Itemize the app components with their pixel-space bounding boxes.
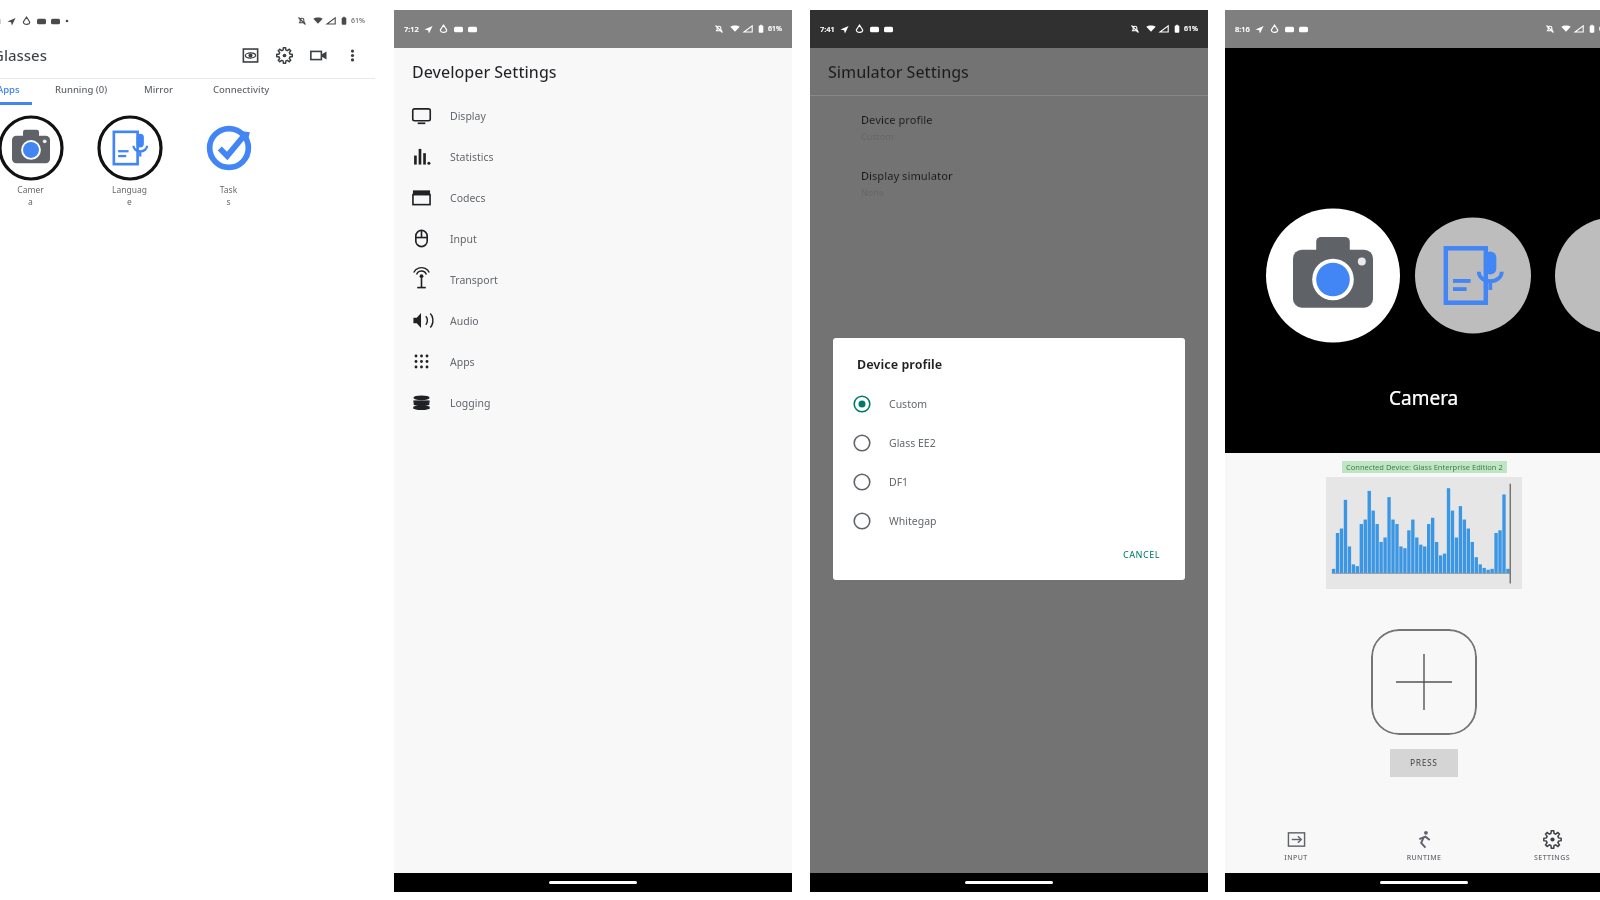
button[interactable]: Settings	[267, 38, 301, 72]
staticText: Connectivity	[213, 83, 270, 96]
staticText: Input	[450, 232, 477, 246]
staticText: Whitegap	[889, 514, 937, 528]
button[interactable]: Add	[1371, 629, 1477, 735]
staticText: 7:11	[0, 16, 2, 26]
staticText: Logging	[450, 396, 491, 410]
button[interactable]: Whitegap	[833, 501, 1185, 540]
button[interactable]: Apps	[394, 341, 792, 382]
staticText: Camer a	[0, 184, 80, 208]
staticText: Device profile	[861, 112, 933, 127]
button[interactable]: Input	[394, 218, 792, 259]
button[interactable]: Glass EE2	[833, 423, 1185, 462]
button[interactable]: PRESS	[1390, 749, 1458, 777]
staticText: Apps	[0, 83, 20, 96]
button[interactable]: RUNTIME	[1394, 830, 1454, 863]
button[interactable]: Display	[394, 95, 792, 136]
staticText: Audio	[450, 314, 479, 328]
staticText: DF1	[889, 475, 909, 489]
staticText: 7:41	[820, 24, 835, 34]
staticText: Display simulator	[861, 168, 953, 183]
staticText: PRESS	[1410, 757, 1438, 769]
staticText: Statistics	[450, 150, 494, 164]
staticText: Apps	[450, 355, 475, 369]
staticText: Mirror	[144, 83, 173, 96]
button[interactable]: INPUT	[1266, 830, 1326, 863]
staticText: None	[861, 186, 884, 198]
staticText: CANCEL	[1123, 548, 1161, 560]
staticText: 61%	[768, 24, 782, 34]
staticText: Display	[450, 109, 486, 123]
button[interactable]: DF1	[833, 462, 1185, 501]
button[interactable]: Custom	[833, 384, 1185, 423]
staticText: Task s	[179, 184, 278, 208]
staticText: Transport	[450, 273, 498, 287]
button[interactable]: Task s	[179, 115, 278, 208]
staticText: Custom	[889, 397, 928, 411]
staticText: Glasses	[0, 45, 48, 65]
button[interactable]: Logging	[394, 382, 792, 423]
staticText: 61%	[1599, 24, 1600, 34]
button[interactable]: Connectivity	[193, 79, 289, 105]
staticText: Developer Settings	[412, 61, 557, 83]
button[interactable]: Codecs	[394, 177, 792, 218]
button[interactable]: Preview	[233, 38, 267, 72]
button[interactable]: Transport	[394, 259, 792, 300]
button[interactable]: Audio	[394, 300, 792, 341]
staticText: 61%	[1184, 24, 1198, 34]
staticText: 8:16	[1235, 24, 1250, 34]
button[interactable]: Languag e	[80, 115, 179, 208]
button[interactable]: SETTINGS	[1522, 830, 1582, 863]
staticText: Codecs	[450, 191, 486, 205]
button[interactable]: Statistics	[394, 136, 792, 177]
staticText: SETTINGS	[1522, 853, 1582, 863]
button[interactable]: Running (0)	[39, 79, 123, 105]
button[interactable]: Mirror	[123, 79, 193, 105]
staticText: 7:12	[404, 24, 419, 34]
staticText: INPUT	[1266, 853, 1326, 863]
staticText: Languag e	[80, 184, 179, 208]
button[interactable]: More options	[335, 38, 369, 72]
button[interactable]: Apps	[0, 79, 39, 105]
staticText: RUNTIME	[1394, 853, 1454, 863]
staticText: Glass EE2	[889, 436, 936, 450]
button[interactable]: Video	[301, 38, 335, 72]
button[interactable]: CANCEL	[1117, 542, 1167, 566]
button[interactable]: Camer a	[0, 115, 80, 208]
staticText: Device profile	[857, 356, 943, 373]
staticText: 61%	[351, 16, 365, 26]
staticText: Simulator Settings	[828, 61, 969, 83]
staticText: Running (0)	[55, 83, 108, 96]
staticText: Camera	[1389, 385, 1459, 411]
staticText: Connected Device: Glass Enterprise Editi…	[1346, 462, 1503, 472]
staticText: Custom	[861, 130, 894, 142]
